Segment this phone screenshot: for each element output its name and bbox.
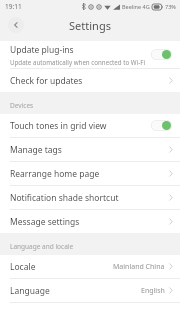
staticText: Mainland China [113, 262, 165, 272]
staticText: Touch tones in grid view [10, 120, 107, 132]
button[interactable]: Toggle [151, 120, 172, 131]
staticText: Update plug-ins [10, 44, 74, 56]
button[interactable]: Update plug-ins [0, 41, 180, 68]
button[interactable]: Back [8, 17, 24, 33]
staticText: Manage tags [10, 144, 169, 156]
button[interactable]: Language [0, 279, 180, 302]
button[interactable]: Locale [0, 255, 180, 278]
staticText: Check for updates [10, 75, 169, 87]
button[interactable]: Toggle [151, 49, 172, 60]
button[interactable]: Message settings [0, 210, 180, 233]
staticText: Beeline 4G [122, 3, 150, 10]
staticText: Devices [10, 101, 34, 110]
staticText: Language [10, 285, 141, 297]
staticText: 73% [165, 3, 176, 10]
button[interactable]: Check for updates [0, 69, 180, 92]
button[interactable]: Touch tones in grid view [0, 114, 180, 137]
staticText: Rearrange home page [10, 168, 169, 180]
staticText: Message settings [10, 216, 169, 228]
staticText: Language and locale [10, 242, 74, 251]
staticText: Update automatically when connected to W… [10, 58, 145, 66]
button[interactable]: Notification shade shortcut [0, 186, 180, 209]
staticText: Locale [10, 261, 113, 273]
button[interactable]: Manage tags [0, 138, 180, 161]
staticText: Settings [69, 18, 111, 33]
button[interactable]: Rearrange home page [0, 162, 180, 185]
staticText: English [141, 286, 165, 296]
staticText: Notification shade shortcut [10, 192, 169, 204]
staticText: 19:11 [5, 2, 22, 11]
